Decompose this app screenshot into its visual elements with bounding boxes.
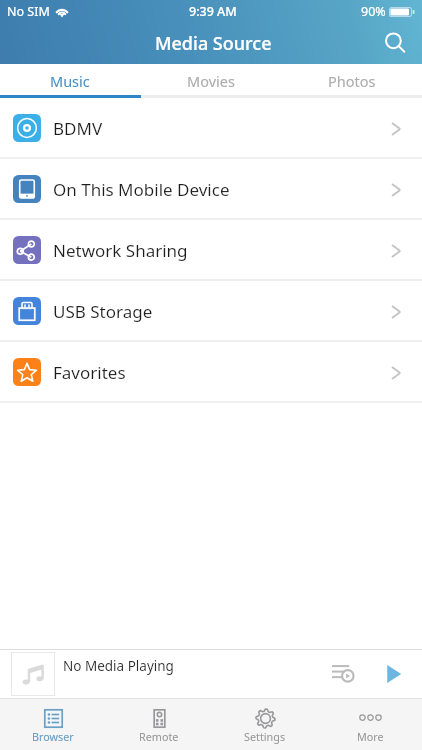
staticText: 90% [361, 3, 386, 20]
button[interactable]: Network Sharing [0, 220, 422, 279]
button[interactable]: Remote [106, 699, 212, 750]
staticText: On This Mobile Device [53, 178, 230, 201]
button[interactable]: Favorites [0, 342, 422, 401]
staticText: More [357, 729, 384, 744]
button[interactable]: Movies [140, 64, 281, 95]
button[interactable]: On This Mobile Device [0, 159, 422, 218]
staticText: BDMV [53, 117, 103, 140]
button[interactable]: Playlist [325, 656, 361, 692]
button[interactable]: Settings [212, 699, 318, 750]
button[interactable]: More [318, 699, 422, 750]
button[interactable]: Search [378, 26, 412, 60]
button[interactable]: BDMV [0, 98, 422, 157]
button[interactable]: Browser [0, 699, 106, 750]
button[interactable]: Photos [281, 64, 422, 95]
staticText: Movies [187, 71, 235, 91]
button[interactable]: Play [376, 656, 412, 692]
staticText: Media Source [155, 31, 272, 56]
staticText: Photos [328, 71, 376, 91]
button[interactable]: Music [0, 64, 140, 95]
staticText: 9:39 AM [189, 3, 237, 20]
staticText: Music [50, 71, 90, 91]
staticText: Favorites [53, 361, 126, 384]
staticText: USB Storage [53, 300, 153, 323]
staticText: Network Sharing [53, 239, 188, 262]
staticText: Browser [32, 729, 74, 744]
staticText: No SIM [7, 3, 50, 20]
staticText: No Media Playing [63, 657, 174, 675]
staticText: Settings [244, 729, 286, 744]
staticText: Remote [139, 729, 179, 744]
button[interactable]: USB Storage [0, 281, 422, 340]
